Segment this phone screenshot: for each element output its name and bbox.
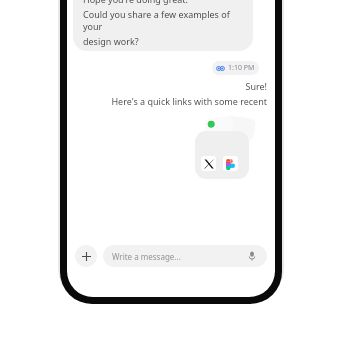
staticText: 1:10 PM (228, 63, 255, 73)
staticText: Write a message... (112, 251, 246, 262)
button[interactable]: Hope you're doing great. (73, 0, 253, 51)
staticText: Here's a quick links with some recent (111, 95, 267, 107)
other: Figma (223, 156, 238, 171)
other: Seen (216, 64, 225, 73)
staticText: Could you share a few examples of your (83, 8, 243, 32)
staticText: design work? (83, 35, 139, 47)
button[interactable]: X (193, 117, 257, 181)
staticText: Sure! (245, 80, 267, 92)
button[interactable]: Seen (212, 61, 259, 75)
staticText: Hope you're doing great. (83, 0, 188, 5)
button[interactable]: Write a message... (103, 245, 267, 267)
button[interactable]: Voice message (246, 250, 258, 262)
button[interactable]: Add attachment (75, 245, 97, 267)
other: X (201, 156, 216, 171)
